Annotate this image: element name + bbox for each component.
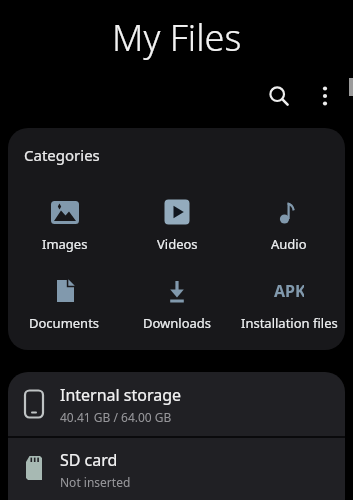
staticText: SD card [60, 449, 118, 471]
button[interactable]: Audio [233, 197, 345, 253]
staticText: APK [274, 280, 304, 302]
button[interactable]: Videos [121, 197, 233, 253]
button[interactable] [303, 74, 347, 118]
staticText: Categories [24, 145, 100, 165]
button[interactable] [255, 72, 303, 120]
button[interactable]: Images [8, 197, 121, 253]
staticText: Videos [157, 235, 198, 253]
button[interactable]: APK [233, 276, 345, 332]
staticText: Not inserted [60, 474, 131, 490]
button[interactable]: Documents [8, 276, 121, 332]
staticText: Downloads [143, 314, 212, 332]
staticText: Audio [271, 235, 307, 253]
staticText: Images [42, 235, 88, 253]
staticText: My Files [112, 13, 242, 62]
button[interactable]: Downloads [121, 276, 233, 332]
button[interactable]: Internal storage [8, 372, 345, 436]
button[interactable]: SD card [8, 438, 345, 500]
staticText: Installation files [241, 314, 338, 332]
staticText: 40.41 GB / 64.00 GB [60, 409, 172, 425]
staticText: Documents [29, 314, 100, 332]
staticText: Internal storage [60, 384, 182, 406]
